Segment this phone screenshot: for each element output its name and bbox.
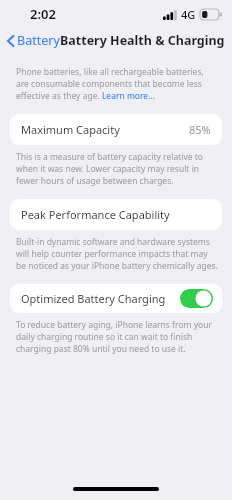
button[interactable]: Maximum Capacity	[10, 114, 222, 145]
staticText: Phone batteries, like all rechargeable b…	[16, 66, 218, 102]
button[interactable]: Peak Performance Capability	[10, 199, 222, 230]
button[interactable]: Optimized Battery Charging toggle	[180, 289, 213, 308]
button[interactable]: Battery	[0, 30, 64, 51]
staticText: Optimized Battery Charging	[21, 291, 166, 306]
staticText: 2:02	[30, 5, 56, 23]
staticText: Peak Performance Capability	[21, 207, 170, 222]
staticText: Built-in dynamic software and hardware s…	[16, 236, 218, 272]
staticText: Battery Health & Charging	[60, 32, 225, 49]
staticText: 85%	[189, 122, 211, 137]
staticText: This is a measure of battery capacity re…	[16, 151, 218, 187]
staticText: To reduce battery aging, iPhone learns f…	[16, 319, 218, 355]
staticText: Maximum Capacity	[21, 122, 120, 137]
staticText: 4G	[181, 7, 196, 22]
staticText: Battery	[17, 32, 60, 49]
button[interactable]: Optimized Battery Charging	[10, 284, 222, 313]
